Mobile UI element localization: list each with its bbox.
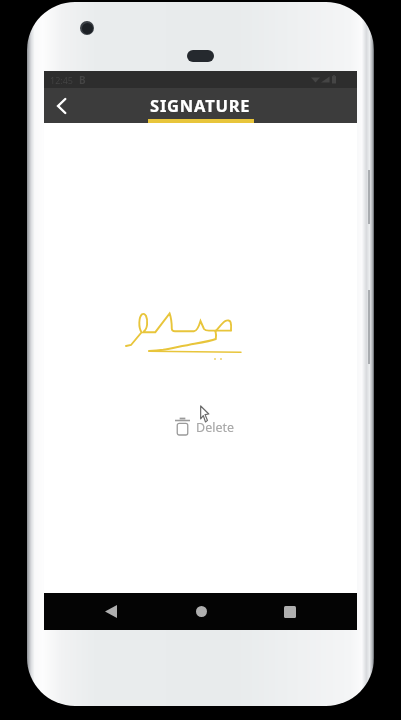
staticText: Delete (196, 419, 235, 436)
staticText: SIGNATURE (150, 94, 251, 116)
button[interactable]: Back (89, 593, 133, 630)
button[interactable]: Delete (171, 413, 239, 439)
button[interactable]: Back (44, 89, 78, 123)
staticText: 12:45 (50, 74, 74, 86)
button[interactable]: Recent apps (268, 593, 312, 630)
button[interactable]: Home (179, 593, 223, 630)
staticText: B (79, 73, 86, 87)
